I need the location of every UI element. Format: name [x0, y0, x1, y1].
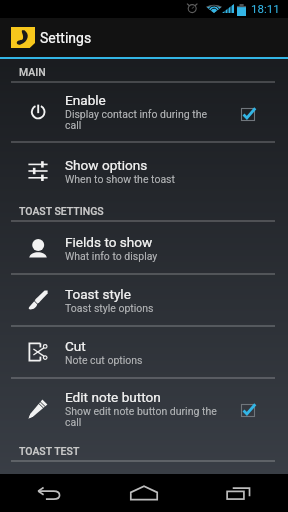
staticText: TOAST TEST: [19, 445, 80, 457]
staticText: TOAST SETTINGS: [19, 205, 104, 217]
button[interactable]: Recent apps: [192, 474, 288, 512]
staticText: Cut: [65, 338, 86, 354]
button[interactable]: Fields to show: [0, 222, 288, 273]
staticText: Toast style options: [65, 302, 154, 314]
button[interactable]: Cut: [0, 327, 288, 377]
staticText: Show options: [65, 157, 148, 173]
button[interactable]: Enable: [0, 83, 288, 141]
button[interactable]: Toast style: [0, 275, 288, 325]
button[interactable]: Settings: [0, 18, 288, 57]
staticText: MAIN: [19, 66, 46, 78]
staticText: What info to display: [65, 250, 158, 262]
button[interactable]: Show options: [0, 143, 288, 198]
staticText: Enable: [65, 92, 106, 108]
staticText: 18:11: [251, 2, 280, 15]
staticText: Toast style: [65, 286, 131, 302]
button[interactable]: Back: [0, 474, 96, 512]
staticText: Note cut options: [65, 354, 143, 366]
button[interactable]: Home: [96, 474, 192, 512]
staticText: Show edit note button during the call: [65, 405, 221, 429]
staticText: Fields to show: [65, 234, 153, 250]
staticText: When to show the toast: [65, 173, 175, 185]
staticText: Settings: [40, 30, 92, 46]
staticText: Display contact info during the call: [65, 108, 221, 132]
staticText: Edit note button: [65, 389, 161, 405]
button[interactable]: Edit note button: [0, 379, 288, 438]
